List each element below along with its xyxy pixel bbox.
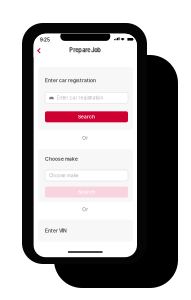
button[interactable]: Back: [36, 46, 47, 57]
staticText: Enter VIN: [45, 228, 67, 234]
staticText: Choose make: [49, 173, 79, 178]
staticText: Search: [78, 114, 95, 120]
staticText: 9:25: [40, 37, 50, 43]
staticText: Enter car registration: [56, 95, 103, 101]
button[interactable]: Search: [45, 186, 128, 197]
staticText: Choose make: [45, 156, 78, 162]
button[interactable]: Search: [45, 111, 128, 122]
staticText: Or: [82, 135, 88, 141]
staticText: Or: [82, 207, 88, 212]
staticText: Enter car registration: [45, 77, 96, 83]
staticText: Search: [78, 189, 95, 195]
staticText: Prepare Job: [69, 47, 101, 54]
